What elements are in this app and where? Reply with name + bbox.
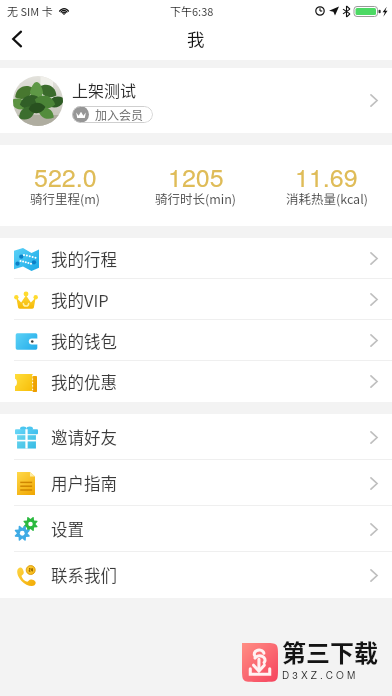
staticText: 我的钱包	[51, 329, 117, 353]
staticText: 无 SIM 卡	[7, 3, 53, 19]
staticText: 我的优惠	[51, 370, 117, 394]
staticText: 第三下载	[282, 634, 378, 669]
staticText: 1205	[168, 158, 224, 194]
staticText: 加入会员	[95, 106, 144, 123]
staticText: 我	[187, 26, 205, 51]
staticText: 消耗热量(kcal)	[286, 189, 368, 207]
staticText: 骑行时长(min)	[155, 189, 237, 207]
button[interactable]: 加入会员	[72, 106, 153, 123]
staticText: 下午6:38	[170, 3, 214, 19]
staticText: 上架测试	[72, 78, 137, 101]
staticText: 我的VIP	[51, 288, 109, 312]
staticText: 用户指南	[51, 471, 117, 495]
staticText: D3XZ.COM	[282, 668, 359, 682]
staticText: 11.69	[295, 158, 358, 194]
staticText: 522.0	[34, 158, 97, 194]
staticText: 联系我们	[51, 563, 117, 587]
button[interactable]: 设置	[0, 506, 392, 552]
button[interactable]: 我的优惠	[0, 361, 392, 402]
button[interactable]: 邀请好友	[0, 414, 392, 460]
button[interactable]: 用户指南	[0, 460, 392, 506]
staticText: 我的行程	[51, 247, 117, 271]
staticText: 设置	[51, 517, 84, 541]
button[interactable]: 上架测试	[0, 68, 392, 133]
staticText: 邀请好友	[51, 425, 117, 449]
button[interactable]: 我的VIP	[0, 279, 392, 320]
button[interactable]: 联系我们	[0, 552, 392, 598]
button[interactable]: 我的钱包	[0, 320, 392, 361]
button[interactable]: Back	[0, 22, 33, 60]
staticText: 骑行里程(m)	[30, 189, 101, 207]
button[interactable]: 我的行程	[0, 238, 392, 279]
